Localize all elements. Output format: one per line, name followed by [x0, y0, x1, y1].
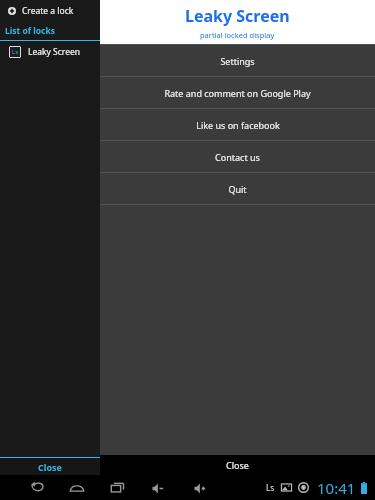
- button[interactable]: Like us on facebook: [100, 109, 375, 141]
- button[interactable]: Home: [64, 475, 90, 500]
- staticText: partial locked display: [200, 30, 275, 40]
- button[interactable]: Volume down: [146, 476, 170, 500]
- button[interactable]: Rate and comment on Google Play: [100, 77, 375, 109]
- button[interactable]: Close: [0, 458, 100, 475]
- button[interactable]: Settings: [100, 45, 375, 77]
- staticText: Close: [226, 459, 249, 471]
- button[interactable]: Quit: [100, 173, 375, 205]
- staticText: Quit: [228, 183, 247, 195]
- button[interactable]: Create a lock: [0, 0, 100, 22]
- button[interactable]: Ls: [0, 41, 100, 63]
- button[interactable]: Contact us: [100, 141, 375, 173]
- staticText: Ls: [266, 482, 275, 493]
- button[interactable]: Recent apps: [104, 475, 130, 500]
- button[interactable]: Volume up: [188, 476, 212, 500]
- staticText: 10:41: [317, 478, 356, 498]
- staticText: Leaky Screen: [28, 46, 81, 58]
- staticText: Contact us: [215, 151, 260, 163]
- staticText: Close: [38, 461, 62, 473]
- staticText: Create a lock: [22, 5, 74, 17]
- button[interactable]: Close: [100, 455, 375, 475]
- staticText: Leaky Screen: [185, 5, 290, 27]
- staticText: Like us on facebook: [196, 119, 280, 131]
- staticText: Ls: [12, 48, 19, 56]
- button[interactable]: Back: [24, 475, 50, 500]
- staticText: Rate and comment on Google Play: [164, 87, 311, 99]
- staticText: Settings: [220, 55, 255, 67]
- staticText: List of locks: [5, 25, 56, 37]
